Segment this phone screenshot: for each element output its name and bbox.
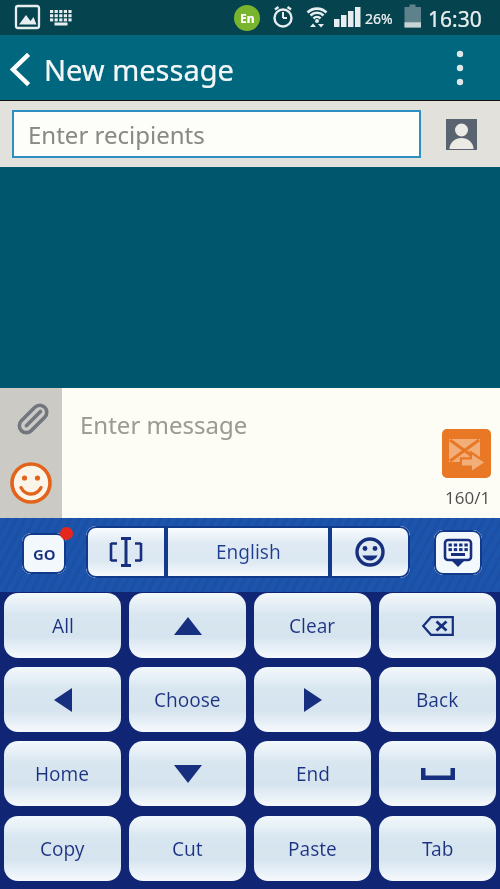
staticText: Paste <box>288 836 337 862</box>
button[interactable]: GO <box>22 533 66 574</box>
staticText: 16:30 <box>428 5 482 34</box>
staticText: Home <box>35 761 90 787</box>
button[interactable] <box>436 35 486 100</box>
button[interactable]: Home <box>4 741 121 806</box>
staticText: Enter message <box>80 408 248 441</box>
button[interactable]: Back <box>379 667 496 732</box>
staticText: Enter recipients <box>28 118 205 151</box>
button[interactable] <box>379 593 496 658</box>
button[interactable]: Tab <box>379 816 496 881</box>
button[interactable]: End <box>254 741 371 806</box>
staticText: English <box>216 539 281 565</box>
button[interactable] <box>8 394 56 446</box>
staticText: Tab <box>422 836 454 862</box>
button[interactable] <box>442 429 491 478</box>
staticText: End <box>296 761 330 787</box>
staticText: All <box>52 613 74 639</box>
button[interactable]: Paste <box>254 816 371 881</box>
staticText: GO <box>33 544 56 564</box>
staticText: Copy <box>40 836 85 862</box>
button[interactable] <box>434 530 482 575</box>
button[interactable] <box>4 667 121 732</box>
staticText: 160/1 <box>445 486 491 509</box>
button[interactable] <box>129 741 246 806</box>
button[interactable] <box>10 462 52 504</box>
button[interactable] <box>330 526 410 578</box>
button[interactable] <box>129 593 246 658</box>
staticText: New message <box>44 50 234 89</box>
button[interactable] <box>379 741 496 806</box>
staticText: Cut <box>172 836 203 862</box>
button[interactable]: All <box>4 593 121 658</box>
button[interactable]: Choose <box>129 667 246 732</box>
button[interactable] <box>0 35 82 100</box>
button[interactable] <box>86 526 166 578</box>
button[interactable] <box>254 667 371 732</box>
staticText: Back <box>416 687 459 713</box>
button[interactable]: Clear <box>254 593 371 658</box>
button[interactable] <box>446 119 477 150</box>
staticText: Choose <box>154 687 221 713</box>
staticText: Clear <box>289 613 336 639</box>
staticText: En <box>240 10 255 26</box>
button[interactable]: Copy <box>4 816 121 881</box>
button[interactable]: Cut <box>129 816 246 881</box>
button[interactable]: Enter recipients <box>12 110 421 158</box>
button[interactable]: English <box>166 526 330 578</box>
staticText: 26% <box>365 9 393 28</box>
button[interactable]: Enter message <box>62 388 437 518</box>
